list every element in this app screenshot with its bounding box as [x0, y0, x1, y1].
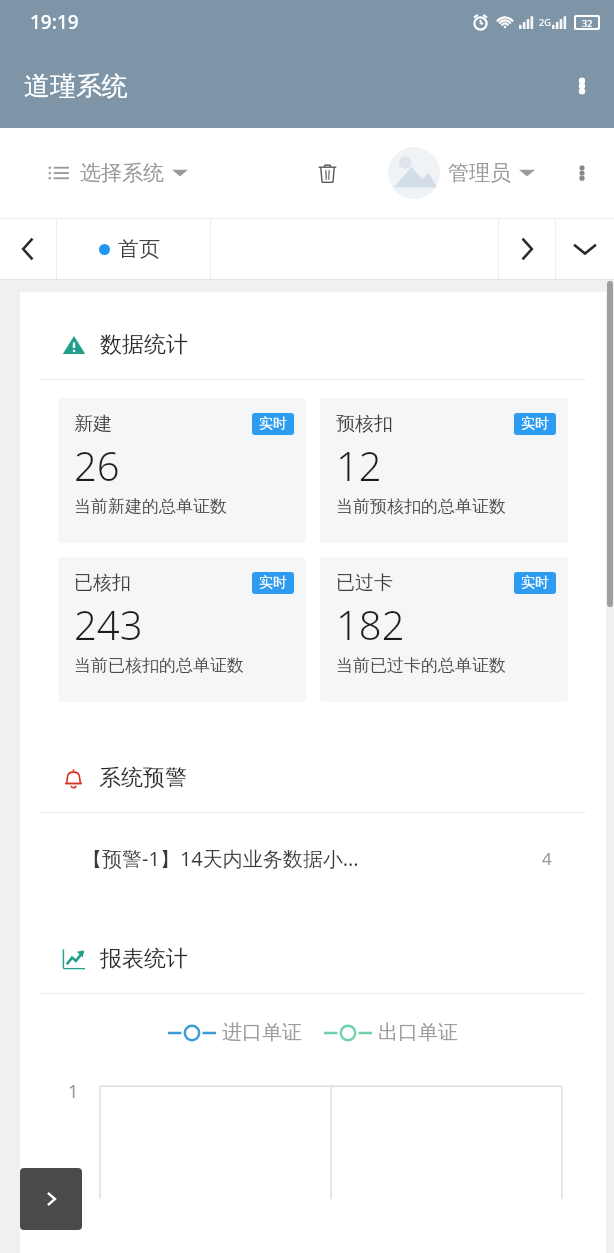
button[interactable]: 展开列表: [556, 218, 614, 280]
staticText: 4: [542, 847, 552, 870]
button[interactable]: 上一页: [0, 218, 56, 280]
staticText: 实时: [521, 574, 549, 592]
staticText: 实时: [521, 415, 549, 433]
staticText: 19:19: [30, 9, 79, 35]
button[interactable]: 展开: [20, 1168, 82, 1230]
button[interactable]: 更多选项: [562, 153, 602, 193]
staticText: 选择系统: [80, 160, 164, 186]
button[interactable]: 进口单证: [168, 1020, 302, 1045]
staticText: 182: [336, 597, 405, 651]
staticText: 32: [582, 17, 593, 28]
staticText: 系统预警: [99, 764, 187, 792]
button[interactable]: 新建: [58, 398, 306, 543]
staticText: 已核扣: [74, 571, 131, 595]
staticText: 【预警-1】14天内业务数据小…: [82, 845, 359, 872]
button[interactable]: 【预警-1】14天内业务数据小…: [40, 813, 586, 903]
staticText: 已过卡: [336, 571, 393, 595]
staticText: 管理员: [448, 160, 511, 186]
button[interactable]: 选择系统: [48, 160, 188, 186]
button[interactable]: 下一页: [499, 218, 555, 280]
button[interactable]: 出口单证: [324, 1020, 458, 1045]
staticText: 243: [74, 597, 143, 651]
button[interactable]: 更多: [558, 62, 606, 110]
button[interactable]: 首页: [57, 218, 210, 280]
button[interactable]: 已过卡: [320, 557, 568, 702]
staticText: 道瑾系统: [24, 70, 128, 103]
staticText: 实时: [259, 415, 287, 433]
staticText: 实时: [259, 574, 287, 592]
staticText: 首页: [118, 236, 160, 262]
staticText: 当前已核扣的总单证数: [74, 655, 244, 676]
staticText: 2G: [539, 16, 551, 28]
staticText: 数据统计: [100, 331, 188, 359]
staticText: 26: [74, 438, 120, 492]
staticText: 进口单证: [222, 1020, 302, 1045]
staticText: 当前新建的总单证数: [74, 496, 227, 517]
button[interactable]: 已核扣: [58, 557, 306, 702]
button[interactable]: 管理员: [388, 147, 535, 199]
staticText: 当前预核扣的总单证数: [336, 496, 506, 517]
staticText: 1: [68, 1079, 79, 1104]
staticText: 出口单证: [378, 1020, 458, 1045]
staticText: 12: [336, 438, 382, 492]
staticText: 报表统计: [100, 945, 188, 973]
staticText: 预核扣: [336, 412, 393, 436]
staticText: 当前已过卡的总单证数: [336, 655, 506, 676]
button[interactable]: 删除: [305, 151, 349, 195]
button[interactable]: 预核扣: [320, 398, 568, 543]
staticText: 新建: [74, 412, 112, 436]
